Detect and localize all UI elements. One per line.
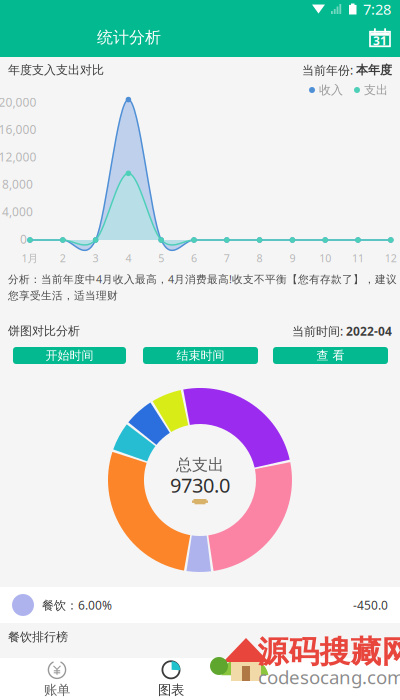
staticText: 分析：当前年度中4月收入最高，4月消费最高!收支不平衡【您有存款了】，建议 bbox=[8, 272, 397, 286]
staticText: 支出 bbox=[364, 83, 388, 97]
staticText: 12 bbox=[385, 251, 397, 265]
staticText: 收入 bbox=[319, 83, 343, 97]
staticText: codesocang.com bbox=[258, 665, 400, 689]
staticText: 查 看 bbox=[316, 348, 344, 363]
staticText: 7 bbox=[224, 251, 230, 265]
staticText: 0 bbox=[20, 231, 27, 247]
staticText: 饼图对比分析 bbox=[8, 324, 80, 338]
button[interactable]: 账单 bbox=[0, 658, 114, 700]
staticText: 本年度 bbox=[356, 63, 392, 77]
staticText: 20,000 bbox=[0, 94, 36, 110]
staticText: 5 bbox=[158, 251, 164, 265]
staticText: 6 bbox=[191, 251, 197, 265]
staticText: 图表 bbox=[158, 682, 184, 698]
staticText: 11 bbox=[352, 251, 364, 265]
staticText: 2022-04 bbox=[346, 323, 392, 339]
staticText: 源码搜藏网 bbox=[257, 633, 400, 671]
staticText: 当前时间: bbox=[292, 323, 346, 339]
staticText: 1月 bbox=[21, 251, 38, 265]
staticText: 4 bbox=[125, 251, 131, 265]
staticText: 餐饮：6.00% bbox=[42, 597, 112, 613]
staticText: 结束时间 bbox=[176, 348, 224, 363]
staticText: 您享受生活，适当理财 bbox=[8, 289, 118, 302]
staticText: 账单 bbox=[44, 682, 70, 698]
staticText: 4,000 bbox=[2, 204, 33, 219]
staticText: 统计分析 bbox=[97, 28, 161, 47]
staticText: 12,000 bbox=[0, 149, 36, 165]
staticText: 当前年份: bbox=[302, 62, 356, 78]
staticText: 10 bbox=[319, 251, 331, 265]
staticText: 开始时间 bbox=[45, 348, 93, 363]
staticText: 8 bbox=[257, 251, 263, 265]
staticText: 9 bbox=[289, 251, 295, 265]
staticText: 年度支入支出对比 bbox=[8, 63, 104, 77]
button[interactable]: 查 看 bbox=[273, 347, 388, 364]
staticText: 总支出 bbox=[176, 455, 224, 475]
staticText: 3 bbox=[93, 251, 99, 265]
button[interactable]: Calendar bbox=[360, 18, 400, 57]
staticText: 9730.0 bbox=[170, 472, 230, 498]
staticText: 7:28 bbox=[363, 0, 391, 19]
staticText: 2 bbox=[60, 251, 66, 265]
button[interactable]: 开始时间 bbox=[13, 347, 126, 364]
staticText: 餐饮排行榜 bbox=[8, 630, 68, 644]
staticText: -450.0 bbox=[353, 597, 388, 613]
staticText: 16,000 bbox=[0, 121, 36, 137]
button[interactable]: 图表 bbox=[114, 658, 228, 700]
button[interactable]: 结束时间 bbox=[143, 347, 258, 364]
staticText: 31 bbox=[373, 32, 387, 48]
staticText: 8,000 bbox=[2, 176, 33, 192]
